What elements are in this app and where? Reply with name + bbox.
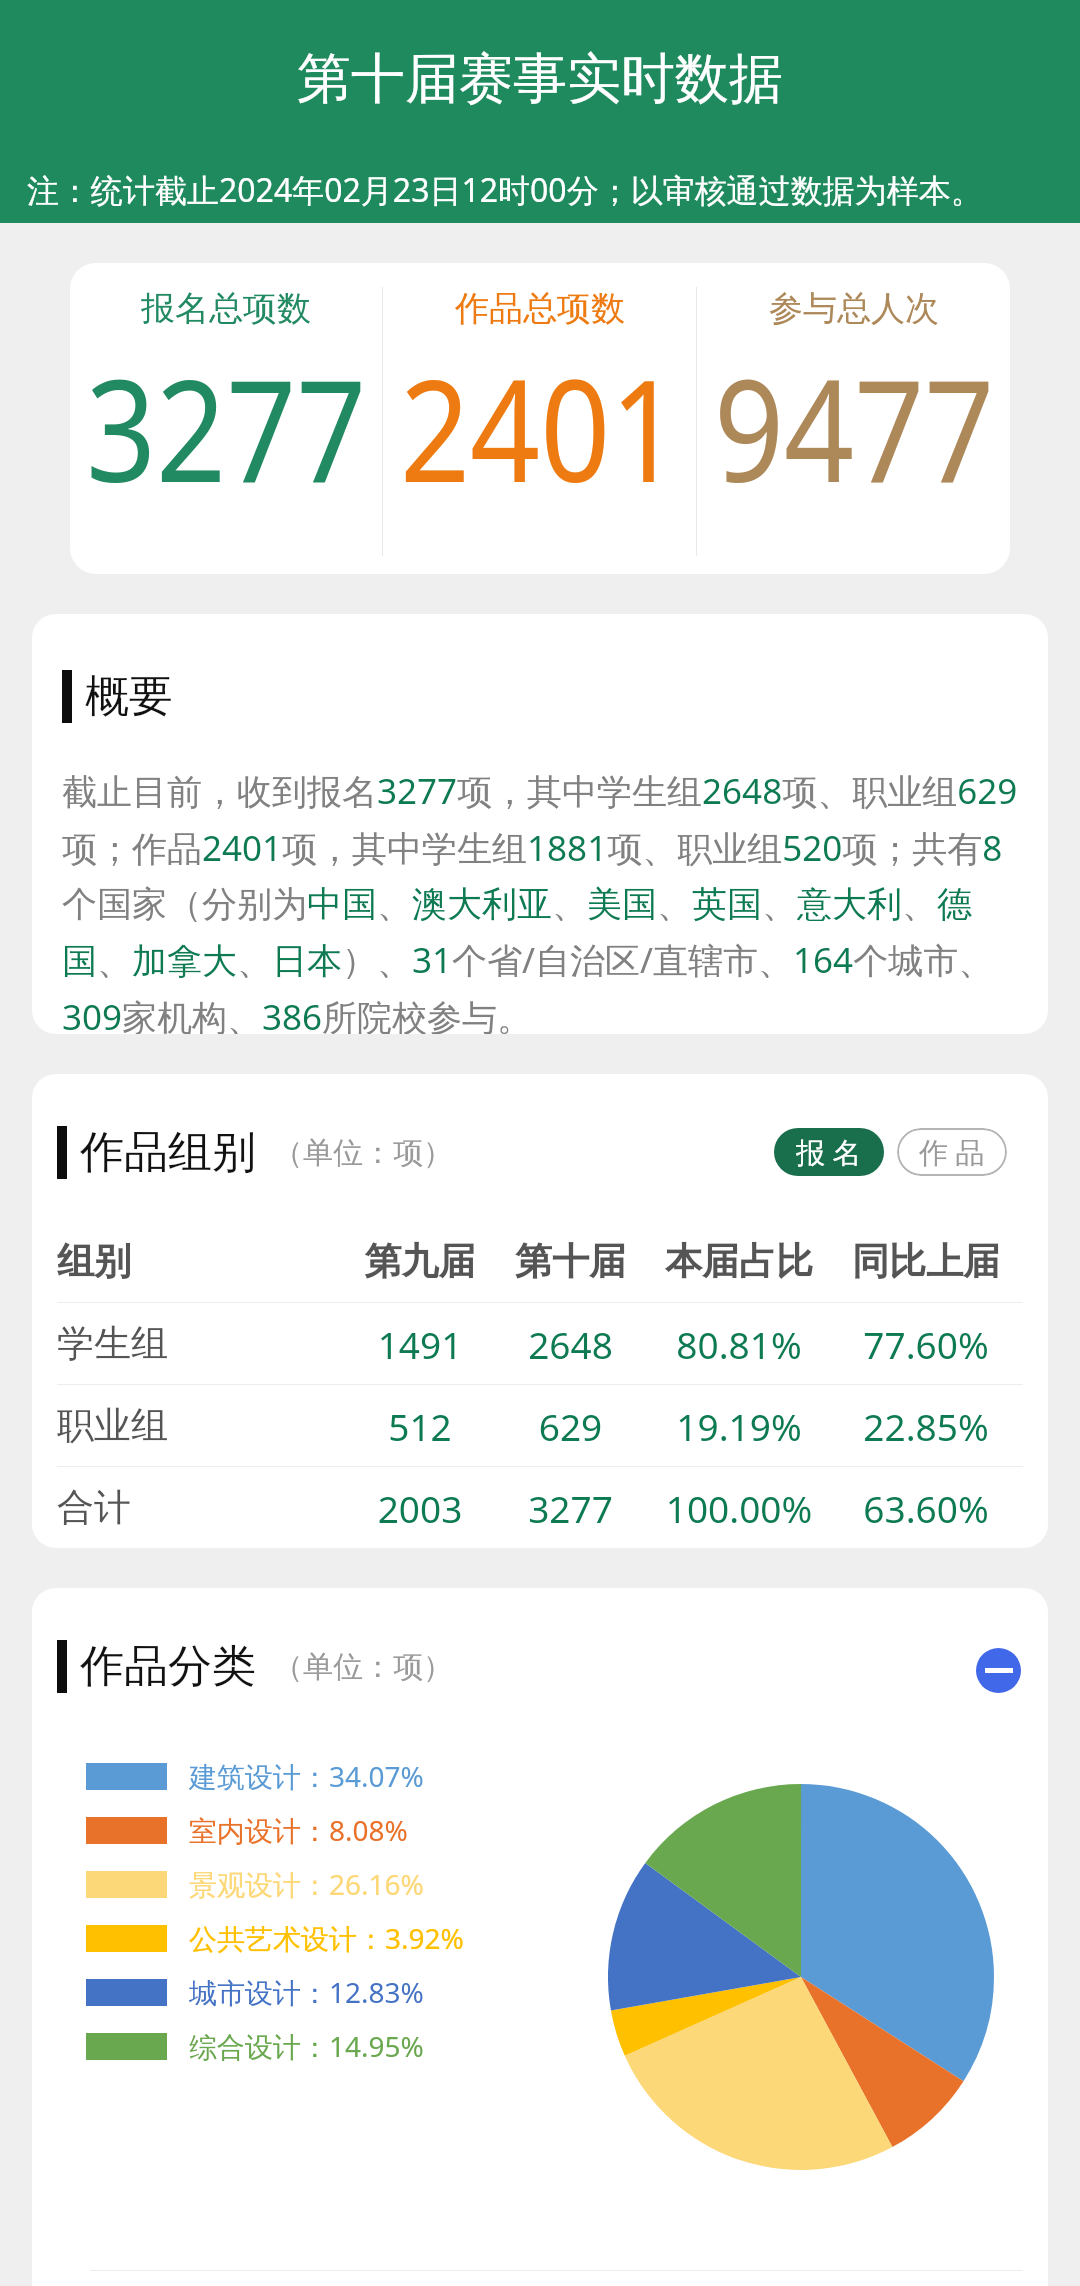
staticText: 学生组: [57, 1320, 348, 1367]
staticText: 100.00%: [649, 1483, 829, 1533]
staticText: 第十届赛事实时数据: [0, 45, 1080, 113]
button[interactable]: 建筑设计：34.07%: [86, 1749, 424, 1803]
staticText: 本届占比: [649, 1238, 829, 1285]
button[interactable]: 概要: [62, 669, 173, 724]
staticText: 作品组别: [80, 1125, 256, 1180]
staticText: 第十届: [492, 1238, 649, 1285]
staticText: 3277: [492, 1483, 649, 1533]
staticText: 2648: [492, 1319, 649, 1369]
button[interactable]: 景观设计：26.16%: [86, 1857, 424, 1911]
staticText: 景观设计：26.16%: [189, 1865, 424, 1903]
staticText: 63.60%: [829, 1483, 1023, 1533]
staticText: 报 名: [796, 1132, 862, 1172]
staticText: 职业组: [57, 1402, 348, 1449]
staticText: 作 品: [919, 1132, 985, 1172]
staticText: 19.19%: [649, 1401, 829, 1451]
button[interactable]: 综合设计：14.95%: [86, 2019, 424, 2073]
staticText: 作品总项数: [455, 287, 625, 330]
staticText: 合计: [57, 1484, 348, 1531]
staticText: 公共艺术设计：3.92%: [189, 1919, 464, 1957]
staticText: 629: [492, 1401, 649, 1451]
staticText: 报名总项数: [141, 287, 311, 330]
staticText: 9477: [714, 332, 995, 523]
button[interactable]: 参与总人次: [697, 263, 1010, 574]
staticText: 512: [348, 1401, 492, 1451]
button[interactable]: 报名总项数: [70, 263, 382, 574]
button[interactable]: 作 品: [897, 1128, 1007, 1176]
staticText: 城市设计：12.83%: [189, 1973, 424, 2011]
staticText: 80.81%: [649, 1319, 829, 1369]
button[interactable]: 作品分类: [57, 1639, 453, 1694]
staticText: 同比上届: [829, 1238, 1023, 1285]
button[interactable]: 城市设计：12.83%: [86, 1965, 424, 2019]
staticText: 3277: [86, 332, 367, 523]
staticText: 综合设计：14.95%: [189, 2027, 424, 2065]
button[interactable]: 学生组: [57, 1303, 1023, 1384]
staticText: 77.60%: [829, 1319, 1023, 1369]
staticText: 注：统计截止2024年02月23日12时00分；以审核通过数据为样本。: [27, 168, 983, 212]
staticText: 概要: [85, 669, 173, 724]
staticText: 组别: [57, 1238, 348, 1285]
button[interactable]: Collapse section: [976, 1648, 1021, 1693]
staticText: 作品分类: [80, 1639, 256, 1694]
button[interactable]: 报 名: [774, 1128, 884, 1176]
staticText: 参与总人次: [769, 287, 939, 330]
staticText: 22.85%: [829, 1401, 1023, 1451]
button[interactable]: 职业组: [57, 1385, 1023, 1466]
staticText: 2401: [400, 332, 681, 523]
staticText: （单位：项）: [273, 1134, 453, 1172]
button[interactable]: 合计: [57, 1467, 1023, 1548]
staticText: 室内设计：8.08%: [189, 1811, 408, 1849]
button[interactable]: 作品总项数: [383, 263, 696, 574]
button[interactable]: 公共艺术设计：3.92%: [86, 1911, 464, 1965]
staticText: 截止目前，收到报名3277项，其中学生组2648项、职业组629项；作品2401…: [62, 767, 1019, 1034]
staticText: （单位：项）: [273, 1648, 453, 1686]
staticText: 1491: [348, 1319, 492, 1369]
staticText: 第九届: [348, 1238, 492, 1285]
button[interactable]: 作品组别: [57, 1125, 453, 1180]
staticText: 2003: [348, 1483, 492, 1533]
button[interactable]: 室内设计：8.08%: [86, 1803, 408, 1857]
staticText: 建筑设计：34.07%: [189, 1757, 424, 1795]
